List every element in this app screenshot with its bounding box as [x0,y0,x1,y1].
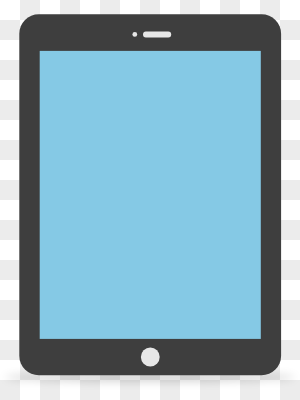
button[interactable]: Home button [141,348,160,367]
